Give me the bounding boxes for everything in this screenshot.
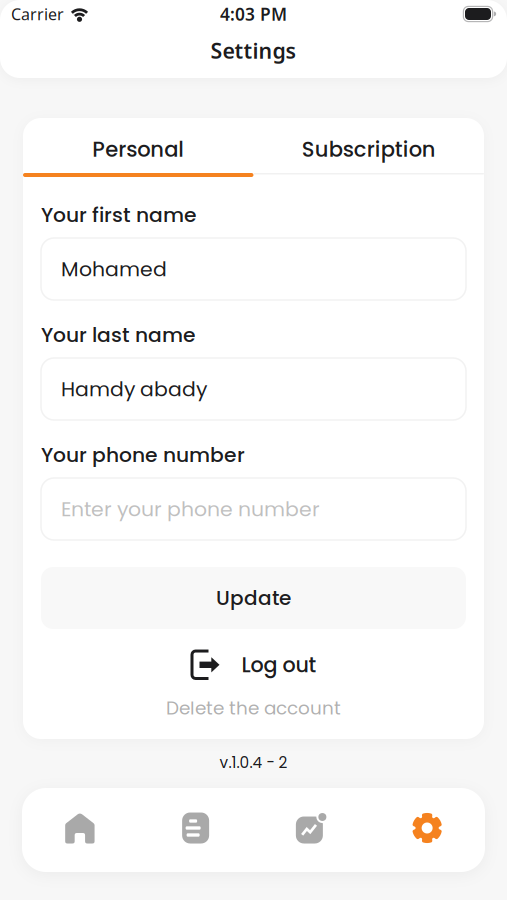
button[interactable]: Hamdy abady bbox=[41, 358, 466, 420]
staticText: Delete the account bbox=[166, 695, 341, 721]
staticText: Mohamed bbox=[61, 255, 167, 283]
staticText: Log out bbox=[241, 650, 316, 679]
staticText: Your first name bbox=[41, 201, 197, 229]
staticText: Hamdy abady bbox=[61, 375, 207, 403]
button[interactable]: Settings bbox=[369, 788, 485, 872]
staticText: Update bbox=[216, 584, 291, 612]
button[interactable]: Subscription bbox=[253, 118, 484, 177]
button[interactable]: Mohamed bbox=[41, 238, 466, 300]
staticText: v.1.0.4 - 2 bbox=[219, 752, 287, 773]
staticText: 4:03 PM bbox=[220, 2, 287, 25]
button[interactable]: Documents bbox=[138, 788, 254, 872]
button[interactable]: Statistics bbox=[253, 788, 369, 872]
button[interactable]: Enter your phone number bbox=[41, 478, 466, 540]
staticText: Your phone number bbox=[41, 441, 245, 469]
button[interactable]: Update bbox=[41, 567, 466, 629]
staticText: Enter your phone number bbox=[61, 495, 320, 523]
staticText: Carrier bbox=[11, 3, 64, 25]
staticText: Personal bbox=[92, 135, 184, 164]
button[interactable]: Delete the account bbox=[41, 695, 466, 721]
staticText: Subscription bbox=[302, 135, 436, 164]
staticText: Your last name bbox=[41, 321, 196, 349]
button[interactable]: Log out bbox=[41, 647, 466, 683]
button[interactable]: Personal bbox=[23, 118, 253, 177]
button[interactable]: Home bbox=[22, 788, 138, 872]
staticText: Settings bbox=[210, 36, 296, 65]
